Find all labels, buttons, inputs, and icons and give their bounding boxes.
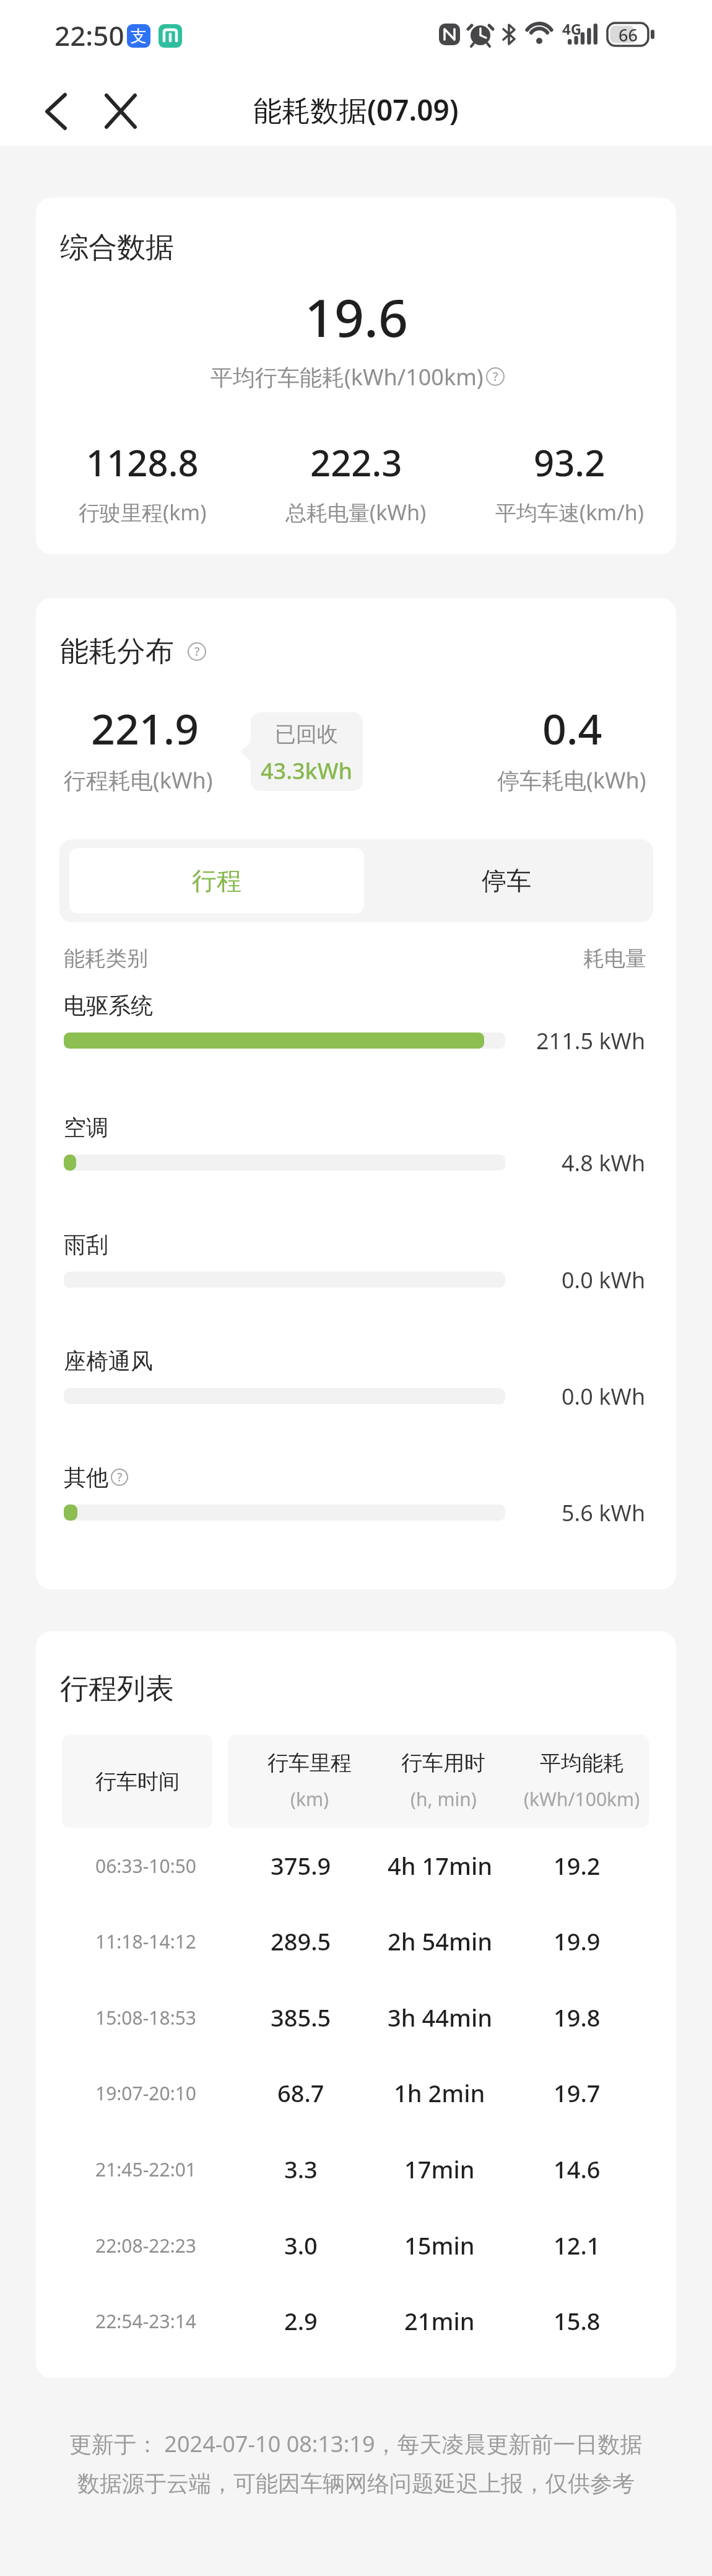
staticText: 能耗数据(07.09)	[253, 90, 459, 129]
staticText: 1h 2min	[394, 2077, 485, 2109]
staticText: 43.3kWh	[261, 756, 353, 786]
staticText: ?	[117, 1469, 123, 1485]
staticText: (kWh/100km)	[524, 1786, 640, 1812]
button[interactable]	[99, 92, 142, 133]
staticText: 行程耗电(kWh)	[64, 765, 213, 795]
staticText: 行车时间	[95, 1768, 180, 1795]
staticText: 0.0 kWh	[562, 1265, 646, 1295]
staticText: 2.9	[284, 2305, 318, 2337]
staticText: 0.4	[542, 699, 602, 757]
staticText: 耗电量	[583, 945, 646, 972]
staticText: 17min	[404, 2153, 475, 2185]
staticText: 15min	[404, 2229, 475, 2261]
staticText: 11:18-14:12	[95, 1929, 197, 1954]
staticText: 空调	[64, 1114, 108, 1142]
staticText: 4h 17min	[388, 1849, 492, 1882]
staticText: 19.8	[554, 2001, 601, 2033]
staticText: 3.3	[284, 2153, 318, 2185]
staticText: 3.0	[284, 2229, 318, 2261]
staticText: 总耗电量(kWh)	[285, 498, 427, 526]
staticText: 行车里程	[267, 1750, 352, 1776]
button[interactable]	[32, 93, 76, 133]
button[interactable]: 行程	[69, 848, 364, 914]
staticText: 222.3	[310, 438, 402, 487]
staticText: 停车耗电(kWh)	[497, 765, 646, 795]
staticText: 15:08-18:53	[95, 2005, 197, 2030]
staticText: 19.7	[554, 2077, 601, 2109]
staticText: 68.7	[277, 2077, 324, 2109]
staticText: 行车用时	[401, 1750, 485, 1776]
staticText: 行程列表	[60, 1671, 174, 1707]
button[interactable]: ?	[486, 367, 505, 386]
staticText: 22:08-22:23	[95, 2233, 197, 2258]
staticText: 66	[619, 24, 638, 46]
staticText: 1128.8	[86, 438, 199, 487]
staticText: (km)	[290, 1786, 329, 1812]
staticText: 2h 54min	[388, 1925, 492, 1957]
staticText: 0.0 kWh	[562, 1381, 646, 1412]
staticText: 行驶里程(km)	[79, 498, 207, 526]
staticText: ?	[194, 644, 200, 660]
staticText: 375.9	[271, 1849, 331, 1882]
staticText: 22:50	[54, 17, 124, 54]
button[interactable]: 停车	[364, 848, 649, 914]
staticText: 4.8 kWh	[562, 1148, 646, 1178]
staticText: 平均能耗	[540, 1750, 624, 1776]
staticText: 已回收	[275, 721, 338, 748]
staticText: 22:54-23:14	[95, 2308, 197, 2334]
staticText: 4G	[562, 19, 582, 39]
staticText: 能耗分布	[60, 634, 174, 670]
staticText: (h, min)	[410, 1786, 477, 1812]
staticText: 停车	[482, 865, 531, 896]
staticText: 5.6 kWh	[562, 1498, 646, 1528]
staticText: 平均行车能耗(kWh/100km)	[211, 362, 484, 392]
staticText: 19.9	[554, 1925, 601, 1957]
staticText: 更新于： 2024-07-10 08:13:19，每天凌晨更新前一日数据	[69, 2429, 643, 2459]
staticText: 3h 44min	[388, 2001, 492, 2033]
staticText: 座椅通风	[64, 1347, 153, 1375]
staticText: 平均车速(km/h)	[495, 498, 645, 526]
staticText: 19:07-20:10	[95, 2080, 197, 2106]
staticText: 211.5 kWh	[536, 1026, 646, 1056]
staticText: 其他	[64, 1464, 108, 1491]
button[interactable]: ?	[188, 642, 206, 661]
staticText: 19.2	[554, 1849, 601, 1882]
staticText: 14.6	[554, 2153, 601, 2185]
staticText: 支	[131, 26, 147, 46]
staticText: 综合数据	[60, 230, 174, 266]
staticText: 385.5	[271, 2001, 331, 2033]
staticText: 93.2	[534, 438, 606, 487]
staticText: 行程	[192, 865, 241, 896]
staticText: 21min	[404, 2305, 475, 2337]
button[interactable]: ?	[111, 1469, 128, 1486]
staticText: 15.8	[554, 2305, 601, 2337]
staticText: 12.1	[554, 2229, 601, 2261]
staticText: 电驱系统	[64, 992, 153, 1019]
staticText: 雨刮	[64, 1231, 108, 1259]
staticText: 能耗类别	[64, 945, 148, 972]
staticText: 21:45-22:01	[95, 2157, 197, 2182]
staticText: ?	[493, 369, 498, 385]
staticText: 289.5	[271, 1925, 331, 1957]
staticText: 19.6	[305, 281, 408, 352]
staticText: 06:33-10:50	[95, 1853, 197, 1879]
staticText: 数据源于云端，可能因车辆网络问题延迟上报，仅供参考	[77, 2469, 635, 2497]
staticText: 221.9	[91, 699, 199, 757]
